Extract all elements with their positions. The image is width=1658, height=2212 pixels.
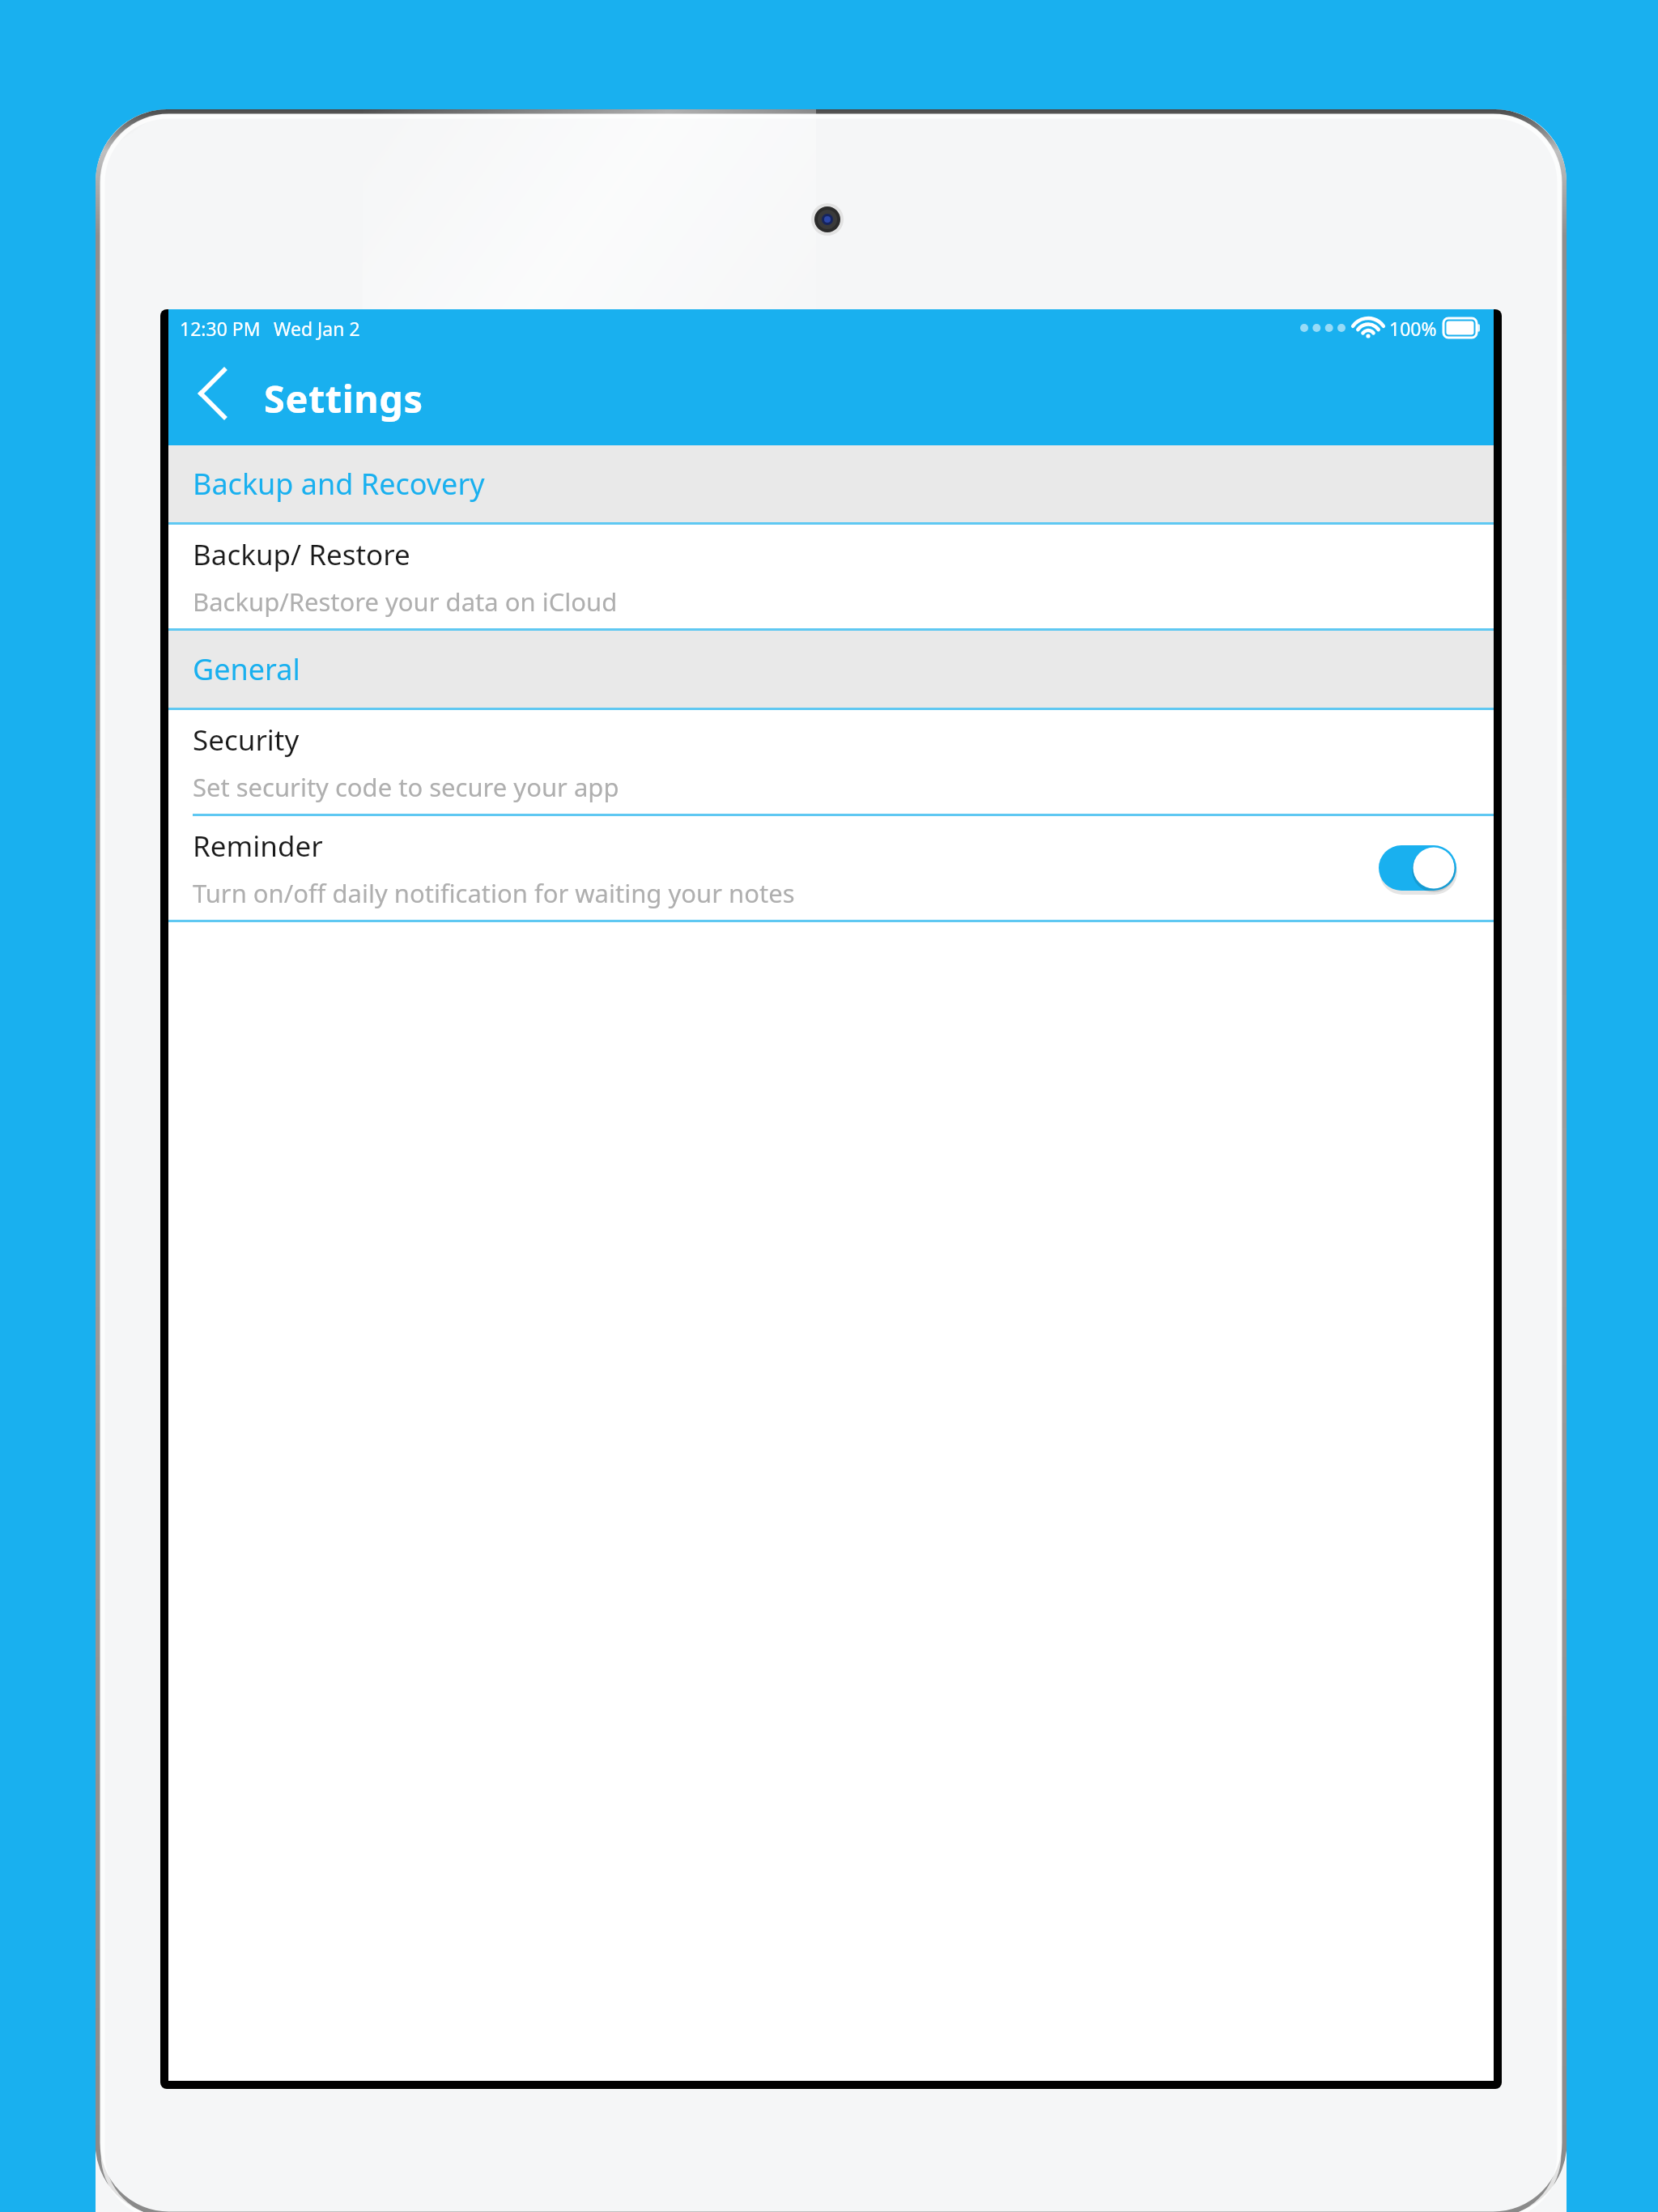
- staticText: 12:30 PM: [180, 316, 261, 341]
- staticText: Wed Jan 2: [274, 316, 360, 341]
- button[interactable]: Reminder: [168, 816, 1494, 920]
- staticText: Backup and Recovery: [193, 464, 485, 504]
- staticText: Settings: [264, 372, 423, 424]
- staticText: Reminder: [193, 827, 323, 866]
- button[interactable]: Security: [168, 710, 1494, 814]
- staticText: Turn on/off daily notification for waiti…: [193, 876, 795, 910]
- button[interactable]: Back: [178, 359, 246, 428]
- staticText: 100%: [1389, 316, 1437, 341]
- staticText: Backup/Restore your data on iCloud: [193, 585, 618, 619]
- staticText: Backup/ Restore: [193, 535, 410, 574]
- button[interactable]: Backup/ Restore: [168, 525, 1494, 628]
- staticText: Security: [193, 721, 300, 759]
- staticText: General: [193, 649, 300, 689]
- staticText: Set security code to secure your app: [193, 770, 619, 804]
- button[interactable]: Reminder toggle, on: [1379, 845, 1456, 891]
